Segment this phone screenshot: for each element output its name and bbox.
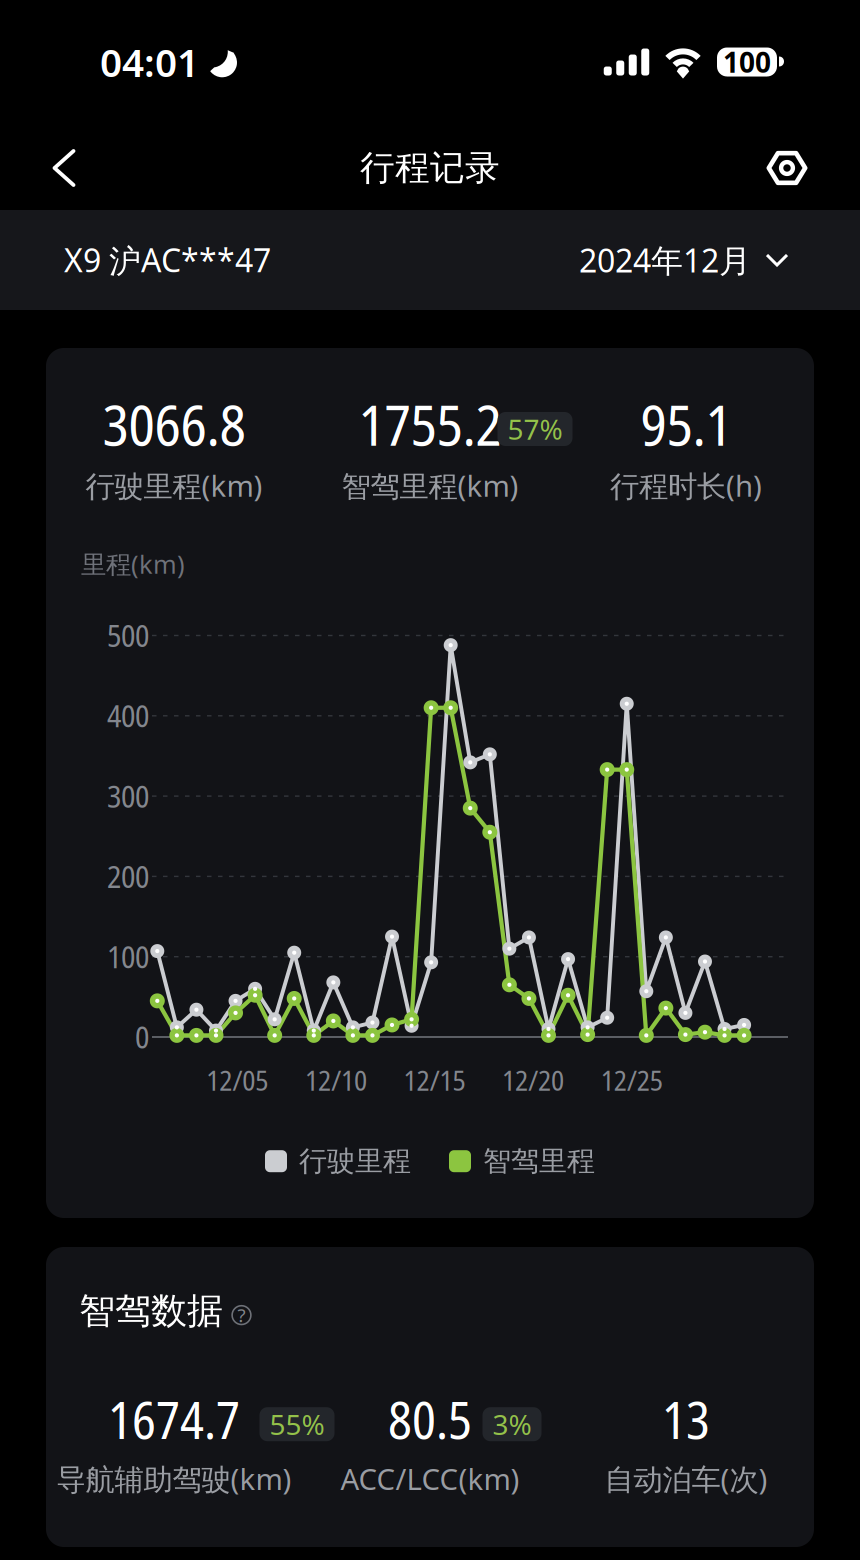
staticText: 智驾里程 xyxy=(483,1144,595,1178)
staticText: 57% xyxy=(507,410,562,448)
staticText: 行程时长(h) xyxy=(610,466,762,505)
staticText: 400 xyxy=(107,695,149,736)
staticText: 55% xyxy=(269,1406,324,1443)
staticText: 500 xyxy=(107,614,149,656)
staticText: 04:01 xyxy=(100,36,199,88)
staticText: 12/25 xyxy=(601,1061,663,1099)
staticText: 200 xyxy=(107,855,149,897)
staticText: 1674.7 xyxy=(108,1385,240,1454)
staticText: 2024年12月 xyxy=(579,239,751,281)
staticText: 12/05 xyxy=(206,1061,268,1099)
staticText: 自动泊车(次) xyxy=(604,1459,767,1498)
staticText: 行驶里程 xyxy=(299,1144,411,1178)
staticText: 1755.2 xyxy=(358,386,501,462)
staticText: 智驾数据 xyxy=(79,1289,223,1333)
staticText: 0 xyxy=(135,1016,149,1058)
staticText: 100 xyxy=(723,43,771,81)
staticText: 100 xyxy=(107,935,149,977)
staticText: 12/20 xyxy=(502,1061,564,1099)
staticText: 行程记录 xyxy=(360,147,500,189)
staticText: 智驾里程(km) xyxy=(341,466,518,505)
staticText: 300 xyxy=(107,775,149,817)
button[interactable]: 2024年12月 xyxy=(579,239,789,281)
staticText: 12/10 xyxy=(305,1061,367,1099)
button[interactable]: Settings xyxy=(752,133,822,203)
staticText: 3% xyxy=(492,1406,531,1443)
staticText: 3066.8 xyxy=(102,386,245,462)
staticText: 行驶里程(km) xyxy=(85,466,262,505)
staticText: 里程(km) xyxy=(81,547,185,581)
staticText: 12/15 xyxy=(403,1061,465,1099)
staticText: X9 沪AC***47 xyxy=(64,239,271,281)
staticText: ? xyxy=(237,1303,245,1327)
button[interactable]: Back xyxy=(29,133,99,203)
staticText: 13 xyxy=(662,1385,710,1454)
staticText: 80.5 xyxy=(388,1385,472,1454)
staticText: 95.1 xyxy=(640,386,731,462)
staticText: ACC/LCC(km) xyxy=(340,1459,519,1498)
staticText: 导航辅助驾驶(km) xyxy=(56,1459,291,1498)
